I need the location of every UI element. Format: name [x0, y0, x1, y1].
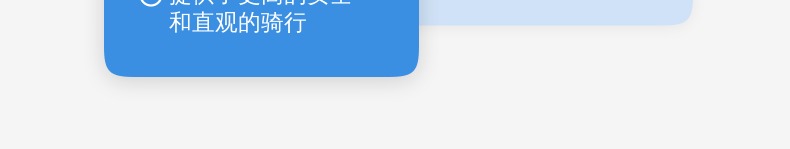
staticText: 和直观的骑行	[169, 8, 307, 36]
button[interactable]: Next card	[380, 0, 693, 25]
staticText: 提供了更高的安全	[169, 0, 353, 8]
button[interactable]: 提供了更高的安全	[104, 0, 419, 77]
